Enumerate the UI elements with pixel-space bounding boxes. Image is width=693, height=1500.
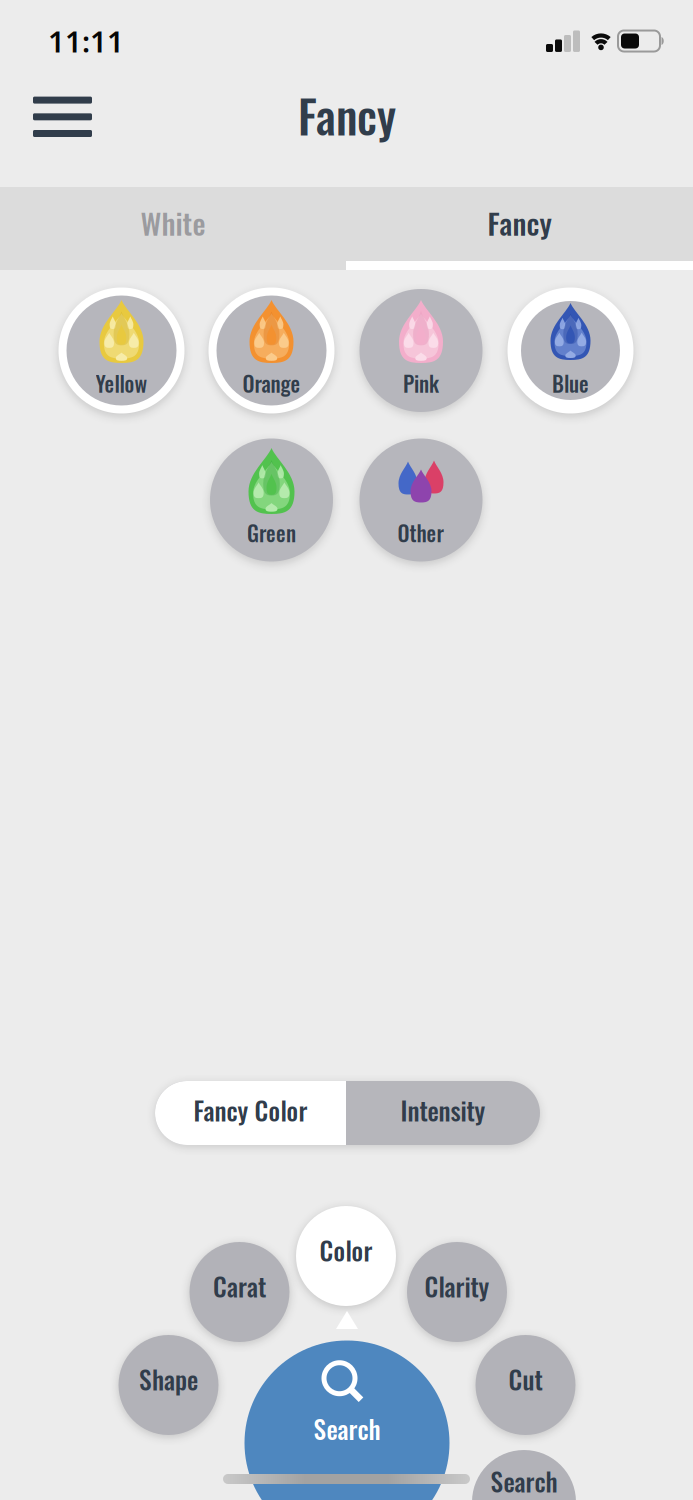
- staticText: White: [140, 201, 205, 244]
- staticText: Clarity: [424, 1267, 489, 1305]
- button[interactable]: Other: [358, 437, 484, 563]
- staticText: 11:11: [48, 21, 124, 60]
- button[interactable]: Pink: [358, 287, 484, 413]
- staticText: Fancy: [487, 201, 551, 244]
- staticText: Other: [397, 517, 444, 548]
- staticText: Carat: [213, 1267, 266, 1305]
- button[interactable]: Color: [296, 1206, 396, 1306]
- button[interactable]: Shape: [118, 1335, 218, 1435]
- staticText: Blue: [552, 367, 589, 399]
- button[interactable]: Intensity: [346, 1081, 540, 1145]
- button[interactable]: Search: [244, 1340, 449, 1500]
- button[interactable]: Fancy Color: [155, 1081, 346, 1145]
- staticText: Shape: [139, 1360, 198, 1398]
- button[interactable]: Cut: [475, 1335, 575, 1435]
- staticText: Cut: [508, 1360, 542, 1398]
- button[interactable]: Menu: [21, 85, 104, 149]
- button[interactable]: Green: [208, 437, 334, 563]
- button[interactable]: Clarity: [407, 1242, 507, 1342]
- button[interactable]: Carat: [189, 1242, 289, 1342]
- button[interactable]: Search: [472, 1450, 576, 1500]
- button[interactable]: Orange: [208, 287, 334, 413]
- button[interactable]: Blue: [507, 287, 633, 413]
- button[interactable]: Yellow: [58, 287, 184, 413]
- staticText: Search: [490, 1462, 557, 1500]
- button[interactable]: Fancy: [346, 187, 693, 270]
- staticText: Color: [319, 1231, 372, 1269]
- staticText: Fancy Color: [193, 1091, 307, 1129]
- staticText: Search: [313, 1410, 380, 1447]
- staticText: Intensity: [400, 1091, 485, 1129]
- staticText: Pink: [403, 367, 439, 399]
- staticText: Green: [247, 517, 296, 548]
- staticText: Yellow: [95, 367, 147, 399]
- staticText: Orange: [242, 367, 300, 399]
- staticText: Fancy: [298, 81, 396, 149]
- button[interactable]: White: [0, 187, 346, 270]
